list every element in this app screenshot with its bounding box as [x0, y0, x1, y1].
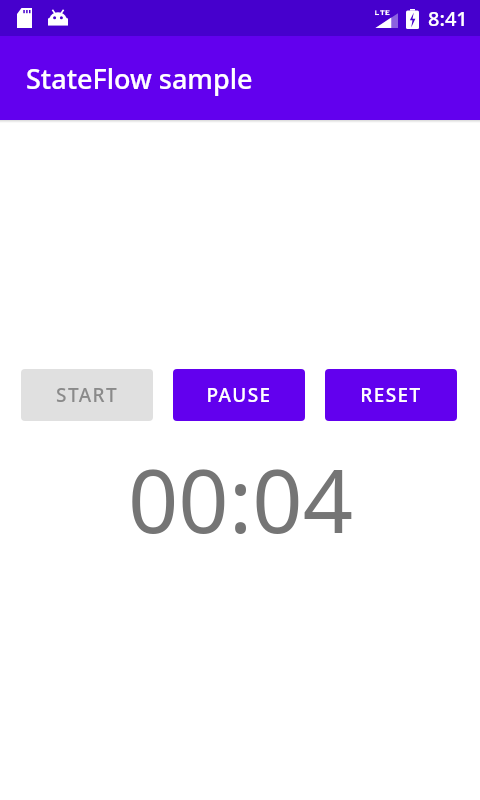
staticText: 00:04: [128, 439, 353, 559]
button[interactable]: PAUSE: [173, 369, 305, 421]
button[interactable]: START: [21, 369, 153, 421]
staticText: RESET: [360, 382, 422, 408]
staticText: StateFlow sample: [26, 60, 253, 97]
staticText: START: [56, 382, 118, 408]
staticText: 8:41: [428, 5, 468, 32]
staticText: PAUSE: [206, 382, 272, 408]
button[interactable]: RESET: [325, 369, 457, 421]
